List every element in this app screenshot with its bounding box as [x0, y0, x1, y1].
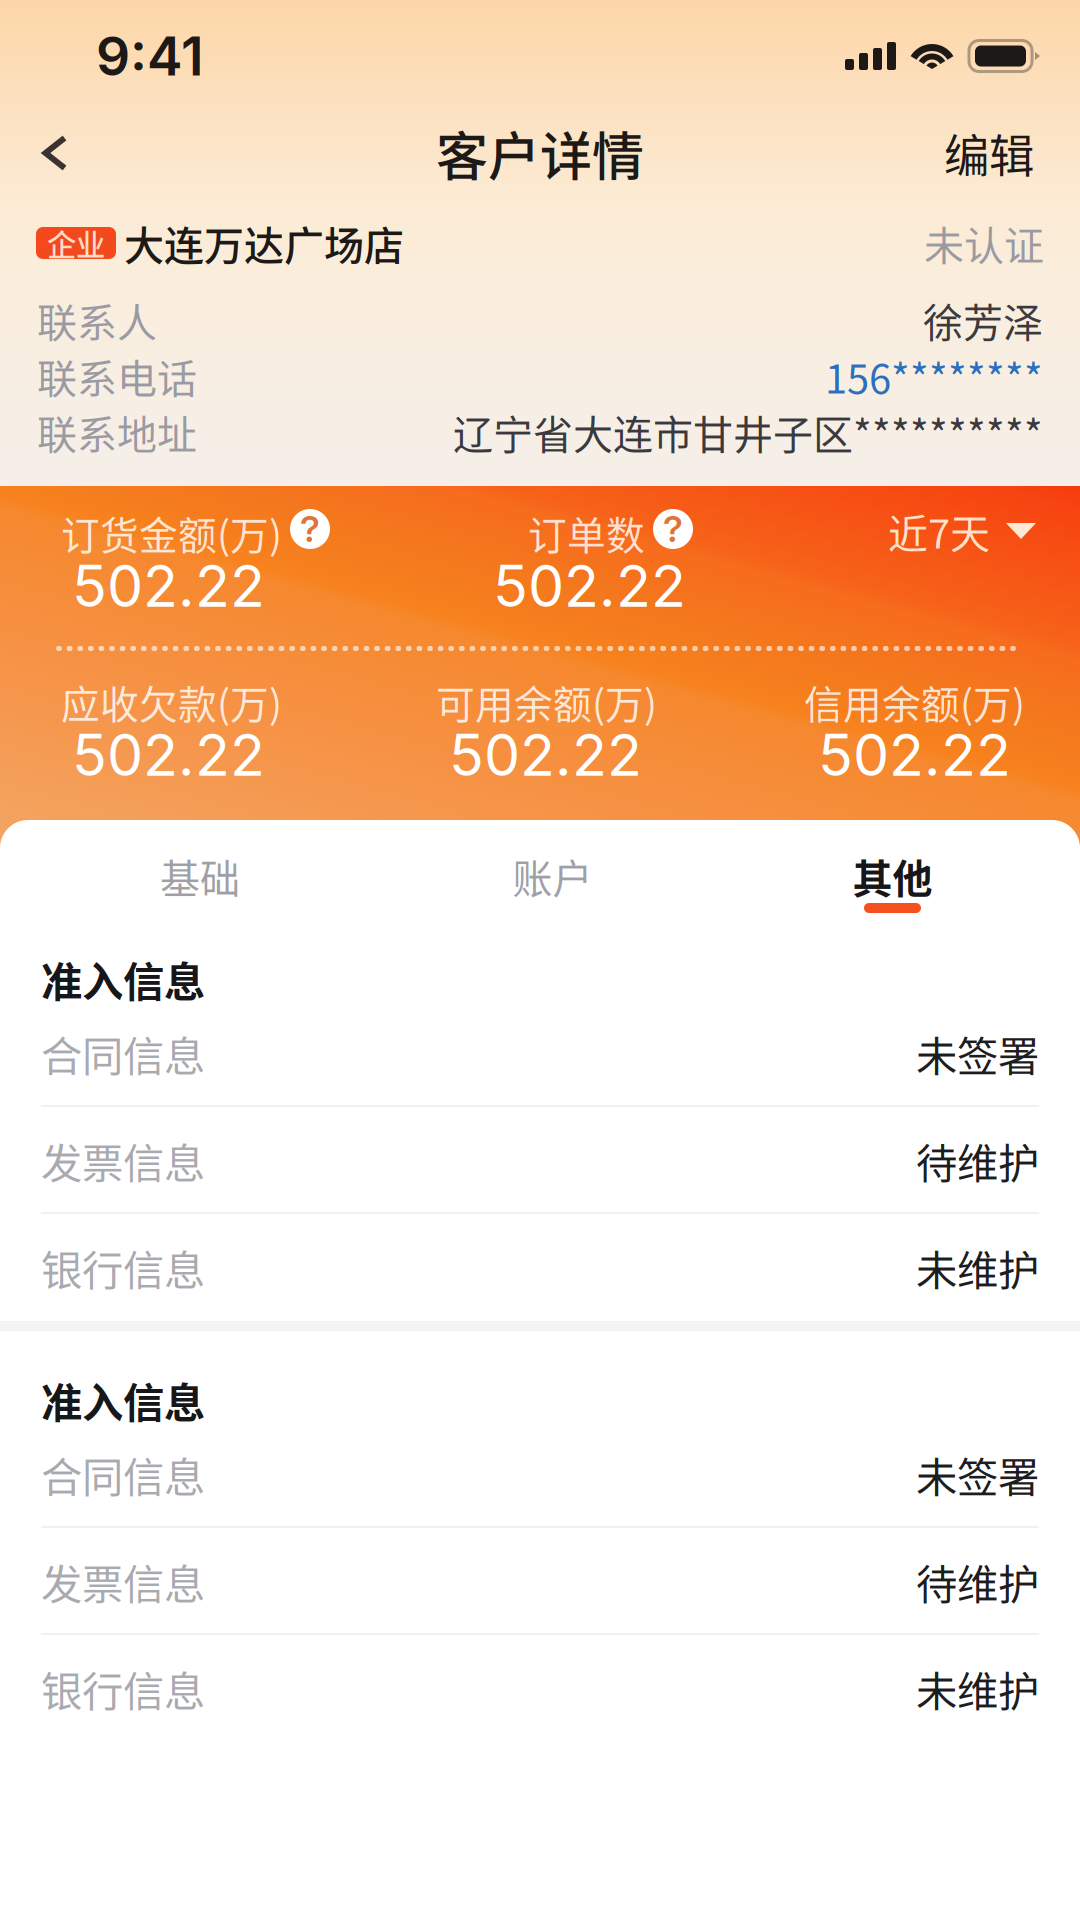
button[interactable]: 发票信息 — [0, 1528, 1080, 1635]
staticText: 156******** — [825, 347, 1043, 405]
staticText: 客户详情 — [436, 115, 644, 191]
staticText: 信用余额(万) — [804, 674, 1025, 730]
staticText: 企业 — [47, 222, 105, 264]
staticText: 未认证 — [924, 214, 1044, 272]
staticText: 订单数 — [528, 505, 645, 561]
button[interactable]: 账户 — [400, 820, 705, 935]
staticText: 应收欠款(万) — [61, 674, 282, 730]
staticText: 其他 — [852, 847, 932, 905]
staticText: 合同信息 — [41, 1445, 205, 1504]
staticText: 联系地址 — [37, 403, 197, 461]
staticText: 联系电话 — [37, 347, 197, 405]
staticText: 未维护 — [916, 1659, 1039, 1718]
button[interactable]: 基础 — [0, 820, 400, 935]
staticText: ? — [300, 507, 320, 551]
staticText: 9:41 — [96, 24, 204, 88]
staticText: 编辑 — [944, 120, 1034, 186]
staticText: 合同信息 — [41, 1024, 205, 1083]
staticText: 未签署 — [916, 1024, 1039, 1083]
staticText: 联系人 — [37, 291, 157, 349]
staticText: 辽宁省大连市甘井子区********** — [453, 403, 1043, 461]
staticText: 502.22 — [72, 551, 265, 621]
staticText: 待维护 — [916, 1131, 1039, 1190]
button[interactable]: 合同信息 — [0, 1000, 1080, 1107]
button[interactable]: 银行信息 — [0, 1214, 1080, 1321]
staticText: ? — [663, 507, 683, 551]
button[interactable]: 合同信息 — [0, 1421, 1080, 1528]
button[interactable]: 其他 — [705, 820, 1080, 935]
staticText: 可用余额(万) — [436, 674, 657, 730]
staticText: 银行信息 — [41, 1238, 205, 1297]
button[interactable]: 编辑 — [920, 105, 1058, 201]
staticText: 发票信息 — [41, 1131, 205, 1190]
staticText: 502.22 — [493, 551, 686, 621]
staticText: 未维护 — [916, 1238, 1039, 1297]
staticText: 银行信息 — [41, 1659, 205, 1718]
staticText: 订货金额(万) — [61, 505, 282, 561]
staticText: 未签署 — [916, 1445, 1039, 1504]
button[interactable]: 发票信息 — [0, 1107, 1080, 1214]
button[interactable]: 近7天 — [888, 508, 1080, 554]
staticText: 近7天 — [888, 502, 990, 560]
button[interactable]: 银行信息 — [0, 1635, 1080, 1742]
staticText: 准入信息 — [41, 949, 205, 1009]
staticText: 502.22 — [449, 720, 642, 790]
staticText: 准入信息 — [41, 1370, 205, 1430]
staticText: 大连万达广场店 — [124, 214, 404, 272]
staticText: 徐芳泽 — [923, 291, 1043, 349]
staticText: 待维护 — [916, 1552, 1039, 1611]
staticText: 发票信息 — [41, 1552, 205, 1611]
staticText: 502.22 — [818, 720, 1011, 790]
staticText: 502.22 — [72, 720, 265, 790]
button[interactable]: 返回 — [0, 105, 110, 201]
staticText: 账户 — [512, 847, 592, 905]
staticText: 基础 — [160, 847, 240, 905]
